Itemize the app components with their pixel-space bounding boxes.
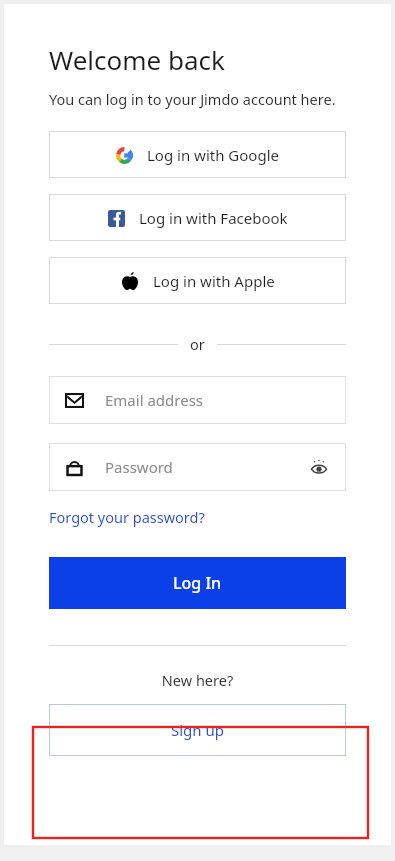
button[interactable]: Log in with Google <box>49 131 346 178</box>
staticText: Log in with Apple <box>153 271 275 291</box>
staticText: Forgot your password? <box>49 507 205 527</box>
staticText: You can log in to your Jimdo account her… <box>49 89 336 109</box>
button[interactable]: Log In <box>49 557 346 609</box>
staticText: Log in with Facebook <box>139 208 288 228</box>
button[interactable]: Sign up <box>49 704 346 756</box>
staticText: Welcome back <box>49 42 225 77</box>
button[interactable]: Email address <box>49 376 346 424</box>
button[interactable]: Forgot your password? <box>49 507 205 527</box>
staticText: Log In <box>173 572 222 594</box>
staticText: Log in with Google <box>147 145 279 165</box>
staticText: Sign up <box>171 720 224 740</box>
button[interactable]: Log in with Apple <box>49 257 346 304</box>
staticText: Email address <box>105 390 204 410</box>
button[interactable]: Log in with Facebook <box>49 194 346 241</box>
staticText: New here? <box>49 670 346 690</box>
staticText: Password <box>105 457 173 477</box>
button[interactable]: Show password <box>306 454 332 480</box>
button[interactable]: Password <box>49 443 346 491</box>
staticText: or <box>190 334 205 354</box>
